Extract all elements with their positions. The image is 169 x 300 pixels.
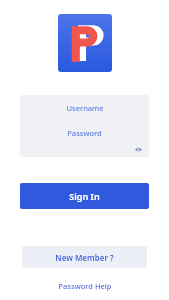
button[interactable]: Password Help <box>52 279 118 293</box>
staticText: Username <box>66 103 104 113</box>
staticText: Sign In <box>69 190 100 202</box>
staticText: Password <box>67 128 102 138</box>
button[interactable]: Show password <box>134 145 143 154</box>
button[interactable]: New Member ? <box>22 246 147 268</box>
button[interactable]: Password <box>20 121 149 145</box>
button[interactable]: Sign In <box>20 183 149 209</box>
button[interactable]: Username <box>20 95 149 121</box>
staticText: New Member ? <box>55 252 114 263</box>
staticText: Password Help <box>58 281 112 291</box>
